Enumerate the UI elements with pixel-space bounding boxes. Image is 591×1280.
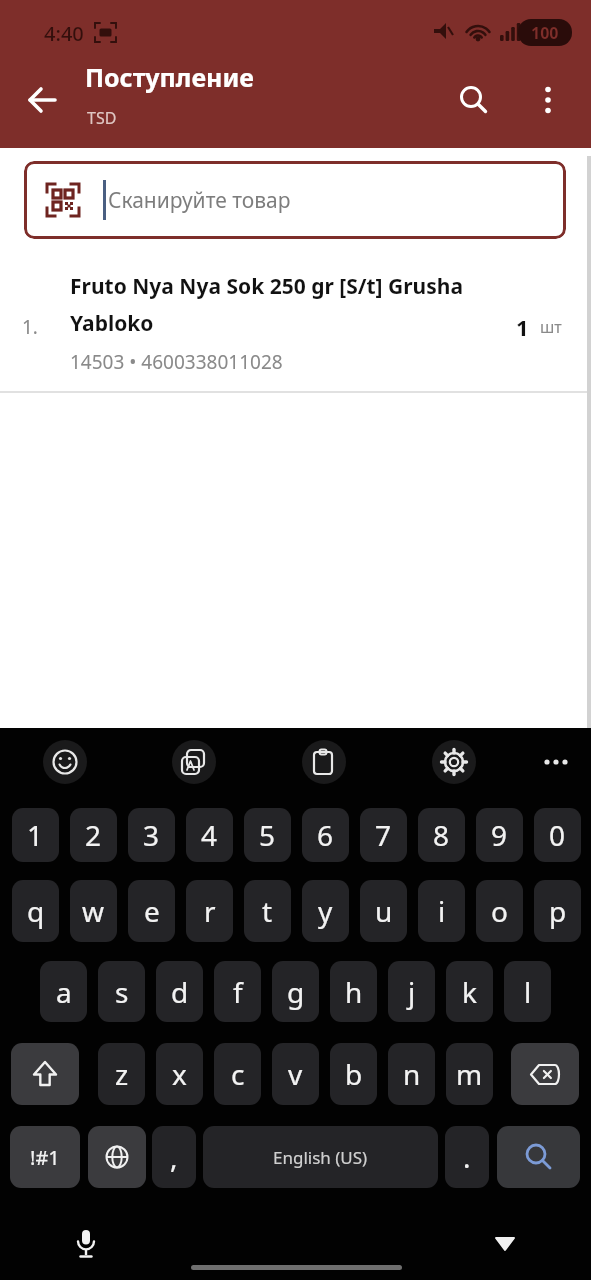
button[interactable]: e xyxy=(128,880,175,942)
staticText: o xyxy=(491,892,508,930)
button[interactable]: g xyxy=(272,961,319,1022)
staticText: 0 xyxy=(549,816,566,854)
button[interactable]: 1. xyxy=(0,255,591,392)
staticText: a xyxy=(56,973,72,1011)
button[interactable]: 7 xyxy=(360,808,407,862)
staticText: i xyxy=(438,892,446,930)
button[interactable] xyxy=(20,78,66,122)
staticText: v xyxy=(288,1055,303,1093)
button[interactable]: 6 xyxy=(302,808,349,862)
button[interactable]: w xyxy=(70,880,117,942)
button[interactable]: b xyxy=(330,1043,377,1105)
staticText: 14503 • 4600338011028 xyxy=(70,349,283,375)
button[interactable]: 1 xyxy=(12,808,59,862)
button[interactable]: k xyxy=(446,961,493,1022)
button[interactable]: 0 xyxy=(534,808,581,862)
staticText: t xyxy=(262,892,273,930)
button[interactable]: 2 xyxy=(70,808,117,862)
button[interactable]: o xyxy=(476,880,523,942)
staticText: , xyxy=(170,1138,178,1176)
button[interactable] xyxy=(88,1126,146,1188)
button[interactable] xyxy=(64,1222,108,1266)
button[interactable]: 5 xyxy=(244,808,291,862)
staticText: e xyxy=(144,892,160,930)
button[interactable]: l xyxy=(504,961,551,1022)
staticText: 1 xyxy=(516,312,529,342)
staticText: p xyxy=(549,892,567,930)
button[interactable] xyxy=(483,1222,527,1266)
button[interactable] xyxy=(43,740,87,784)
button[interactable] xyxy=(497,1126,580,1188)
staticText: Fruto Nya Nya Sok 250 gr [S/t] Grusha Ya… xyxy=(70,272,464,337)
button[interactable]: , xyxy=(152,1126,196,1188)
button[interactable]: . xyxy=(445,1126,489,1188)
button[interactable] xyxy=(534,740,578,784)
staticText: . xyxy=(463,1138,471,1176)
staticText: Поступление xyxy=(85,60,254,94)
button[interactable]: u xyxy=(360,880,407,942)
staticText: шт xyxy=(540,316,562,338)
button[interactable]: z xyxy=(98,1043,145,1105)
staticText: 5 xyxy=(259,816,276,854)
button[interactable] xyxy=(511,1043,579,1105)
button[interactable]: 3 xyxy=(128,808,175,862)
staticText: Сканируйте товар xyxy=(108,186,291,215)
staticText: 3 xyxy=(143,816,160,854)
button[interactable] xyxy=(432,740,476,784)
staticText: m xyxy=(456,1055,483,1093)
staticText: 6 xyxy=(317,816,334,854)
staticText: !#1 xyxy=(30,1144,60,1171)
button[interactable]: n xyxy=(388,1043,435,1105)
button[interactable]: a xyxy=(40,961,87,1022)
button[interactable]: !#1 xyxy=(10,1126,80,1188)
button[interactable]: x xyxy=(156,1043,203,1105)
button[interactable]: j xyxy=(388,961,435,1022)
staticText: English (US) xyxy=(273,1146,368,1169)
staticText: 2 xyxy=(85,816,102,854)
staticText: g xyxy=(287,973,305,1011)
staticText: 1. xyxy=(22,314,38,340)
button[interactable]: y xyxy=(302,880,349,942)
button[interactable]: d xyxy=(156,961,203,1022)
staticText: 4 xyxy=(201,816,218,854)
button[interactable]: c xyxy=(214,1043,261,1105)
staticText: n xyxy=(403,1055,421,1093)
staticText: 8 xyxy=(433,816,450,854)
staticText: w xyxy=(82,892,105,930)
button[interactable]: i xyxy=(418,880,465,942)
button[interactable]: p xyxy=(534,880,581,942)
staticText: x xyxy=(172,1055,187,1093)
button[interactable]: English (US) xyxy=(203,1126,438,1188)
button[interactable] xyxy=(302,740,346,784)
staticText: b xyxy=(345,1055,363,1093)
button[interactable]: 4 xyxy=(186,808,233,862)
button[interactable]: m xyxy=(446,1043,493,1105)
staticText: l xyxy=(524,973,532,1011)
button[interactable]: s xyxy=(98,961,145,1022)
button[interactable]: q xyxy=(12,880,59,942)
staticText: u xyxy=(375,892,393,930)
staticText: c xyxy=(231,1055,245,1093)
button[interactable]: Сканируйте товар xyxy=(24,161,566,239)
button[interactable]: v xyxy=(272,1043,319,1105)
button[interactable] xyxy=(452,78,496,122)
staticText: TSD xyxy=(87,107,117,129)
staticText: 4:40 xyxy=(44,20,84,44)
staticText: h xyxy=(345,973,363,1011)
button[interactable]: 9 xyxy=(476,808,523,862)
staticText: d xyxy=(171,973,189,1011)
button[interactable]: r xyxy=(186,880,233,942)
staticText: q xyxy=(27,892,45,930)
staticText: 1 xyxy=(27,816,44,854)
staticText: 100 xyxy=(531,22,559,44)
button[interactable]: 8 xyxy=(418,808,465,862)
button[interactable] xyxy=(172,740,216,784)
button[interactable] xyxy=(526,78,570,122)
staticText: z xyxy=(115,1055,129,1093)
button[interactable]: h xyxy=(330,961,377,1022)
button[interactable]: t xyxy=(244,880,291,942)
staticText: s xyxy=(115,973,129,1011)
button[interactable] xyxy=(11,1043,79,1105)
staticText: f xyxy=(233,973,243,1011)
button[interactable]: f xyxy=(214,961,261,1022)
